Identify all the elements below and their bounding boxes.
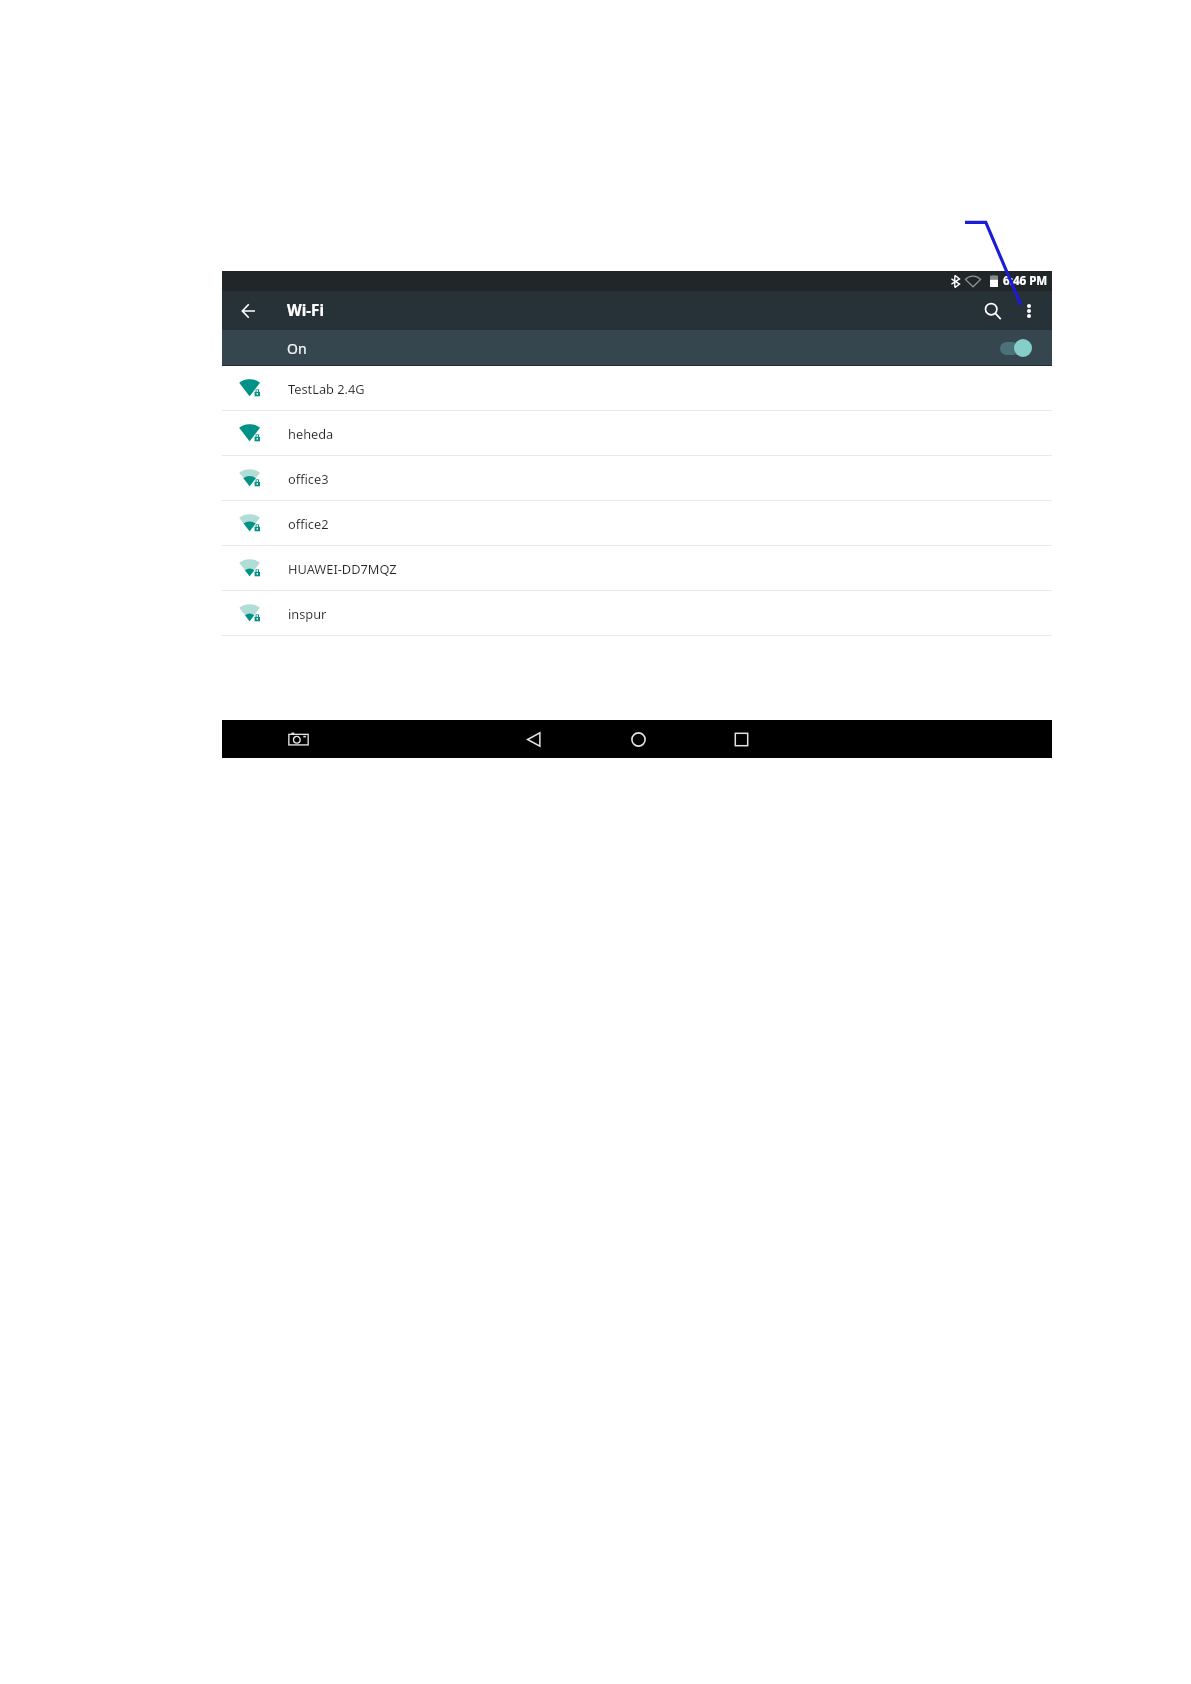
button[interactable]: heheda <box>222 411 1052 455</box>
button[interactable]: Recents <box>724 722 758 756</box>
button[interactable]: More options <box>1013 295 1045 327</box>
button[interactable]: Search <box>975 293 1011 329</box>
staticText: 6:46 PM <box>1003 273 1048 289</box>
staticText: On <box>287 339 307 358</box>
button[interactable]: TestLab 2.4G <box>222 366 1052 410</box>
staticText: Wi-Fi <box>287 300 324 321</box>
button[interactable]: office3 <box>222 456 1052 500</box>
button[interactable]: On <box>222 330 1052 366</box>
button[interactable]: Back <box>517 722 551 756</box>
button[interactable]: office2 <box>222 501 1052 545</box>
button[interactable]: Screenshot <box>280 721 316 757</box>
button[interactable]: Navigate up <box>228 291 268 330</box>
staticText: TestLab 2.4G <box>288 380 365 397</box>
staticText: HUAWEI-DD7MQZ <box>288 560 397 577</box>
button[interactable]: HUAWEI-DD7MQZ <box>222 546 1052 590</box>
staticText: heheda <box>288 425 334 442</box>
button[interactable]: Wi-Fi on <box>994 330 1036 366</box>
staticText: office3 <box>288 470 329 487</box>
staticText: office2 <box>288 515 329 532</box>
button[interactable]: inspur <box>222 591 1052 635</box>
button[interactable]: Home <box>621 722 655 756</box>
staticText: inspur <box>288 605 327 622</box>
